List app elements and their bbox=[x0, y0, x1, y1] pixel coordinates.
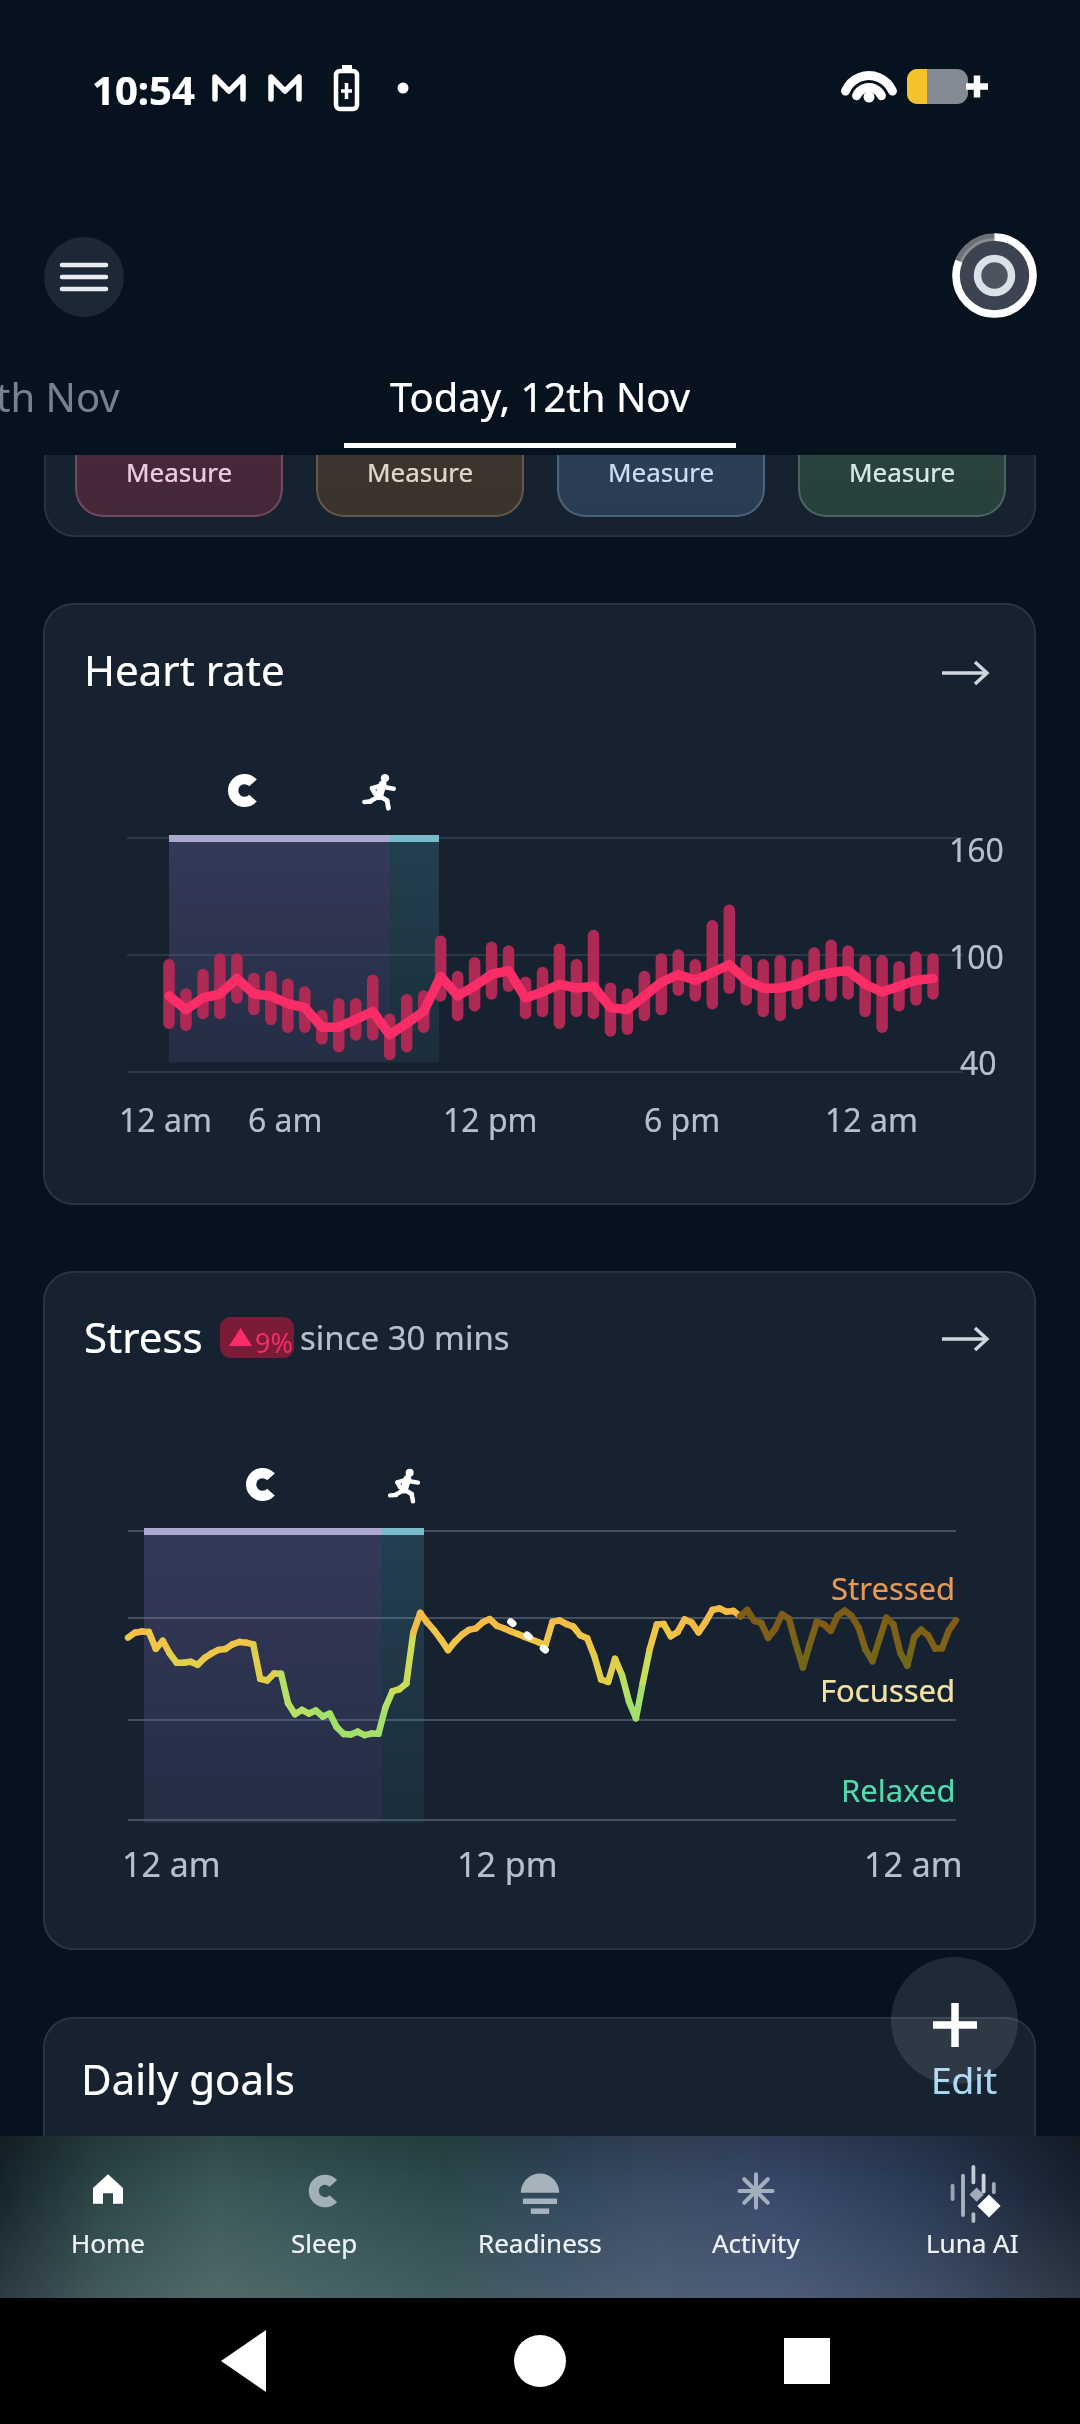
staticText: Measure bbox=[608, 454, 715, 489]
button[interactable]: Activity bbox=[648, 2136, 864, 2298]
staticText: Today, 12th Nov bbox=[390, 369, 691, 423]
staticText: Activity bbox=[712, 2225, 800, 2260]
button[interactable]: Measure bbox=[316, 360, 524, 517]
button[interactable]: Menu bbox=[44, 237, 124, 317]
staticText: Stress bbox=[84, 1308, 203, 1365]
staticText: 160 bbox=[949, 828, 1004, 872]
staticText: 12 am bbox=[825, 1098, 918, 1142]
staticText: Luna AI bbox=[926, 2225, 1019, 2260]
button[interactable]: Daily goals bbox=[43, 2017, 1036, 2237]
button[interactable]: Stress bbox=[43, 1271, 1036, 1950]
staticText: Home bbox=[71, 2225, 145, 2260]
button[interactable]: Sleep bbox=[216, 2136, 432, 2298]
staticText: Heart rate bbox=[84, 641, 285, 698]
staticText: 12 pm bbox=[443, 1098, 538, 1142]
staticText: 12 am bbox=[122, 1841, 221, 1887]
button[interactable]: Luna AI bbox=[864, 2136, 1080, 2298]
staticText: 6 am bbox=[248, 1098, 323, 1142]
button[interactable]: Open details bbox=[935, 1319, 995, 1359]
button[interactable]: Readiness bbox=[432, 2136, 648, 2298]
staticText: Measure bbox=[126, 454, 233, 489]
staticText: Readiness bbox=[478, 2225, 602, 2260]
button[interactable]: Edit bbox=[928, 2051, 1000, 2107]
button[interactable]: Measure bbox=[798, 360, 1006, 517]
staticText: 12 am bbox=[864, 1841, 963, 1887]
staticText: 9% bbox=[255, 1324, 293, 1358]
button[interactable]: Add bbox=[891, 1957, 1018, 2084]
staticText: Edit bbox=[931, 2054, 998, 2104]
staticText: 40 bbox=[960, 1041, 997, 1085]
staticText: th Nov bbox=[0, 369, 120, 423]
staticText: 12 am bbox=[119, 1098, 212, 1142]
staticText: since 30 mins bbox=[300, 1315, 510, 1360]
button[interactable]: Measure bbox=[557, 360, 765, 517]
button[interactable]: Profile bbox=[952, 233, 1037, 318]
staticText: Daily goals bbox=[81, 2050, 295, 2107]
staticText: Focussed bbox=[820, 1669, 956, 1711]
staticText: 10:54 bbox=[92, 62, 195, 116]
button[interactable]: Heart rate bbox=[43, 603, 1036, 1205]
button[interactable]: Measure bbox=[75, 360, 283, 517]
button[interactable]: Open details bbox=[935, 653, 995, 693]
staticText: 6 pm bbox=[644, 1098, 721, 1142]
staticText: Sleep bbox=[291, 2225, 358, 2260]
staticText: Measure bbox=[849, 454, 956, 489]
staticText: Relaxed bbox=[841, 1769, 956, 1811]
staticText: Measure bbox=[367, 454, 474, 489]
staticText: 12 pm bbox=[457, 1841, 558, 1887]
staticText: Stressed bbox=[831, 1567, 956, 1609]
staticText: 100 bbox=[949, 935, 1004, 979]
button[interactable]: Home bbox=[0, 2136, 216, 2298]
